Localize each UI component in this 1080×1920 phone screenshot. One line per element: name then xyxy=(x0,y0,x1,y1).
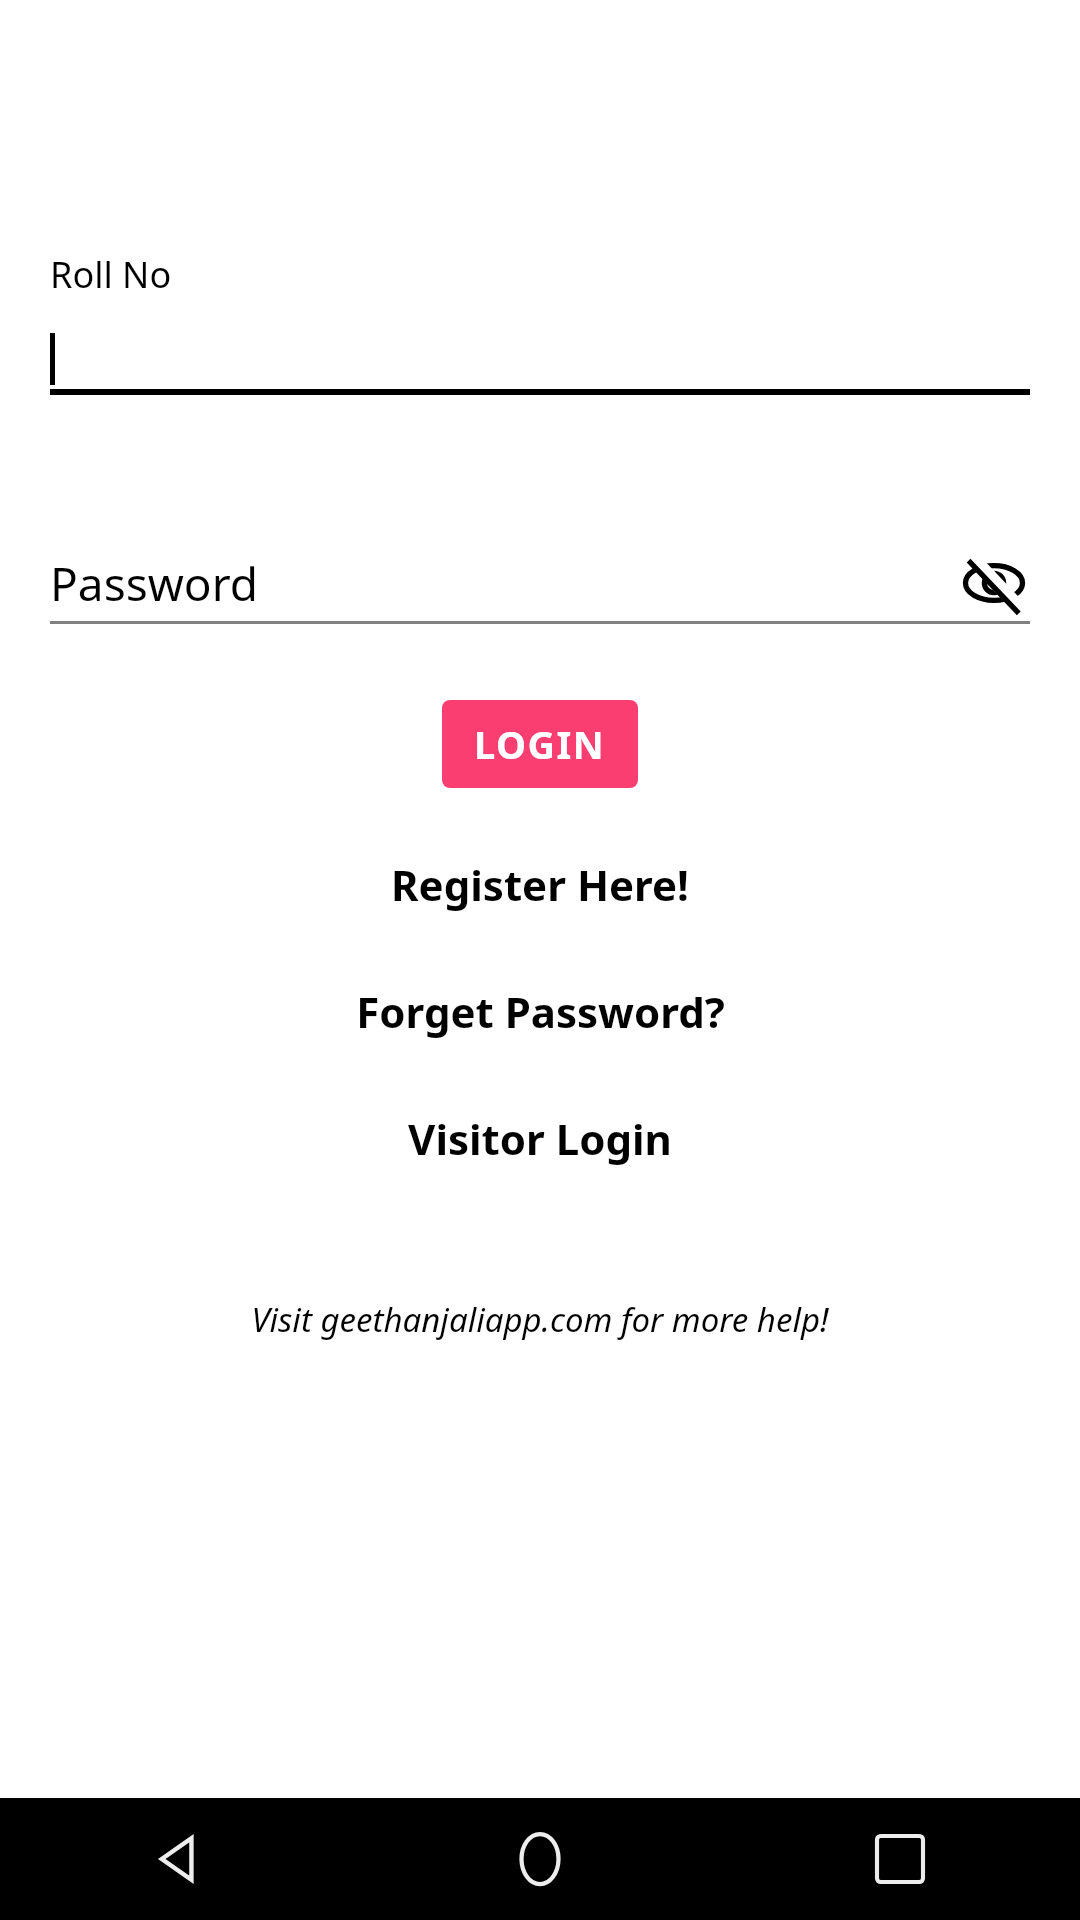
button[interactable]: Back xyxy=(0,1798,360,1920)
button[interactable]: Visitor Login xyxy=(0,1110,1080,1167)
staticText: Visitor Login xyxy=(408,1110,672,1167)
staticText: Register Here! xyxy=(391,856,689,913)
button[interactable]: Home xyxy=(360,1798,720,1920)
staticText: Roll No xyxy=(50,250,172,299)
button[interactable]: Roll No xyxy=(50,250,1030,395)
button[interactable]: Forget Password? xyxy=(0,983,1080,1040)
button[interactable]: Password xyxy=(50,552,958,615)
button[interactable]: Show password xyxy=(958,547,1030,619)
staticText: LOGIN xyxy=(474,718,606,770)
button[interactable]: Recent apps xyxy=(720,1798,1080,1920)
button[interactable]: Register Here! xyxy=(0,856,1080,913)
staticText: Visit geethanjaliapp.com for more help! xyxy=(251,1297,829,1342)
button[interactable]: LOGIN xyxy=(442,700,638,788)
staticText: Forget Password? xyxy=(356,983,725,1040)
staticText: Password xyxy=(50,552,259,615)
button[interactable]: Visit geethanjaliapp.com for more help! xyxy=(0,1297,1080,1342)
